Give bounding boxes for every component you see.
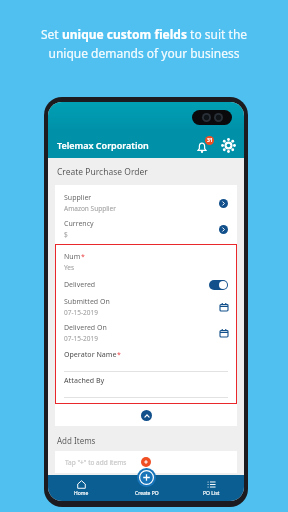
button[interactable]: Delivered On bbox=[64, 320, 228, 346]
button[interactable]: PO List bbox=[179, 475, 244, 501]
staticText: Operator Name bbox=[64, 350, 117, 360]
staticText: 07-15-2019 bbox=[64, 334, 98, 343]
button[interactable]: Currency bbox=[64, 216, 228, 242]
staticText: Yes bbox=[64, 263, 75, 272]
button[interactable]: Add item bbox=[141, 457, 151, 467]
staticText: to suit the bbox=[187, 26, 248, 42]
staticText: Create Purchase Order bbox=[57, 166, 148, 178]
staticText: Tap "+" to add items bbox=[65, 458, 127, 467]
button[interactable]: Operator Name bbox=[64, 350, 228, 372]
button[interactable]: Collapse bbox=[141, 410, 152, 421]
staticText: unique demands of your business bbox=[48, 45, 240, 61]
staticText: * bbox=[81, 252, 85, 262]
button[interactable]: Home bbox=[48, 475, 114, 501]
staticText: $ bbox=[64, 230, 68, 239]
staticText: Attached By bbox=[64, 376, 105, 386]
button[interactable]: Num bbox=[64, 249, 228, 275]
button[interactable]: Settings bbox=[221, 138, 235, 152]
button[interactable]: Delivered bbox=[64, 275, 228, 294]
staticText: * bbox=[117, 350, 121, 360]
staticText: Submitted On bbox=[64, 297, 110, 307]
button[interactable]: Notifications bbox=[196, 136, 214, 154]
staticText: 07-15-2019 bbox=[64, 308, 98, 317]
staticText: Telemax Corporation bbox=[57, 139, 149, 151]
button[interactable]: Supplier bbox=[64, 190, 228, 216]
staticText: Set bbox=[41, 26, 62, 42]
button[interactable]: Tap "+" to add items bbox=[65, 451, 227, 473]
staticText: Supplier bbox=[64, 193, 92, 203]
staticText: Currency bbox=[64, 219, 94, 229]
staticText: unique custom fields bbox=[62, 26, 187, 42]
staticText: PO List bbox=[203, 490, 220, 497]
staticText: Amazon Supplier bbox=[64, 204, 116, 213]
button[interactable]: Attached By bbox=[64, 376, 228, 398]
staticText: Create PO bbox=[135, 490, 159, 497]
button[interactable]: Submitted On bbox=[64, 294, 228, 320]
button[interactable]: Create PO bbox=[137, 468, 156, 487]
staticText: Num bbox=[64, 252, 81, 262]
staticText: Home bbox=[74, 490, 89, 497]
staticText: Add Items bbox=[57, 435, 96, 446]
staticText: 31 bbox=[207, 137, 213, 144]
button[interactable]: Create PO bbox=[114, 475, 179, 501]
staticText: Delivered On bbox=[64, 323, 107, 333]
staticText: Delivered bbox=[64, 280, 96, 290]
